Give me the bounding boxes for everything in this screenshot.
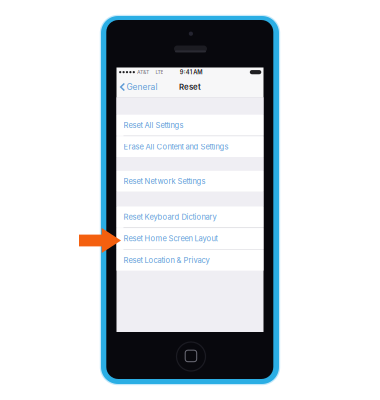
staticText: AT&T [137,69,149,75]
staticText: Erase All Content and Settings [123,142,228,151]
button[interactable]: Erase All Content and Settings [116,136,263,157]
staticText: Reset [179,82,201,92]
button[interactable]: Reset Keyboard Dictionary [116,206,263,227]
staticText: Reset Network Settings [123,177,205,186]
staticText: Reset Keyboard Dictionary [123,212,216,222]
button[interactable]: Reset All Settings [116,115,263,136]
staticText: Reset All Settings [123,121,183,130]
button[interactable]: General [116,77,161,97]
staticText: LTE [155,69,163,75]
staticText: AM [193,69,202,76]
button[interactable]: Reset Location & Privacy [116,250,263,271]
staticText: General [126,82,157,92]
staticText: 9:41 [180,69,192,76]
staticText: Reset Home Screen Layout [123,234,217,243]
button[interactable]: Reset Network Settings [116,171,263,192]
staticText: Reset Location & Privacy [123,256,209,265]
button[interactable]: Reset Home Screen Layout [116,228,263,249]
